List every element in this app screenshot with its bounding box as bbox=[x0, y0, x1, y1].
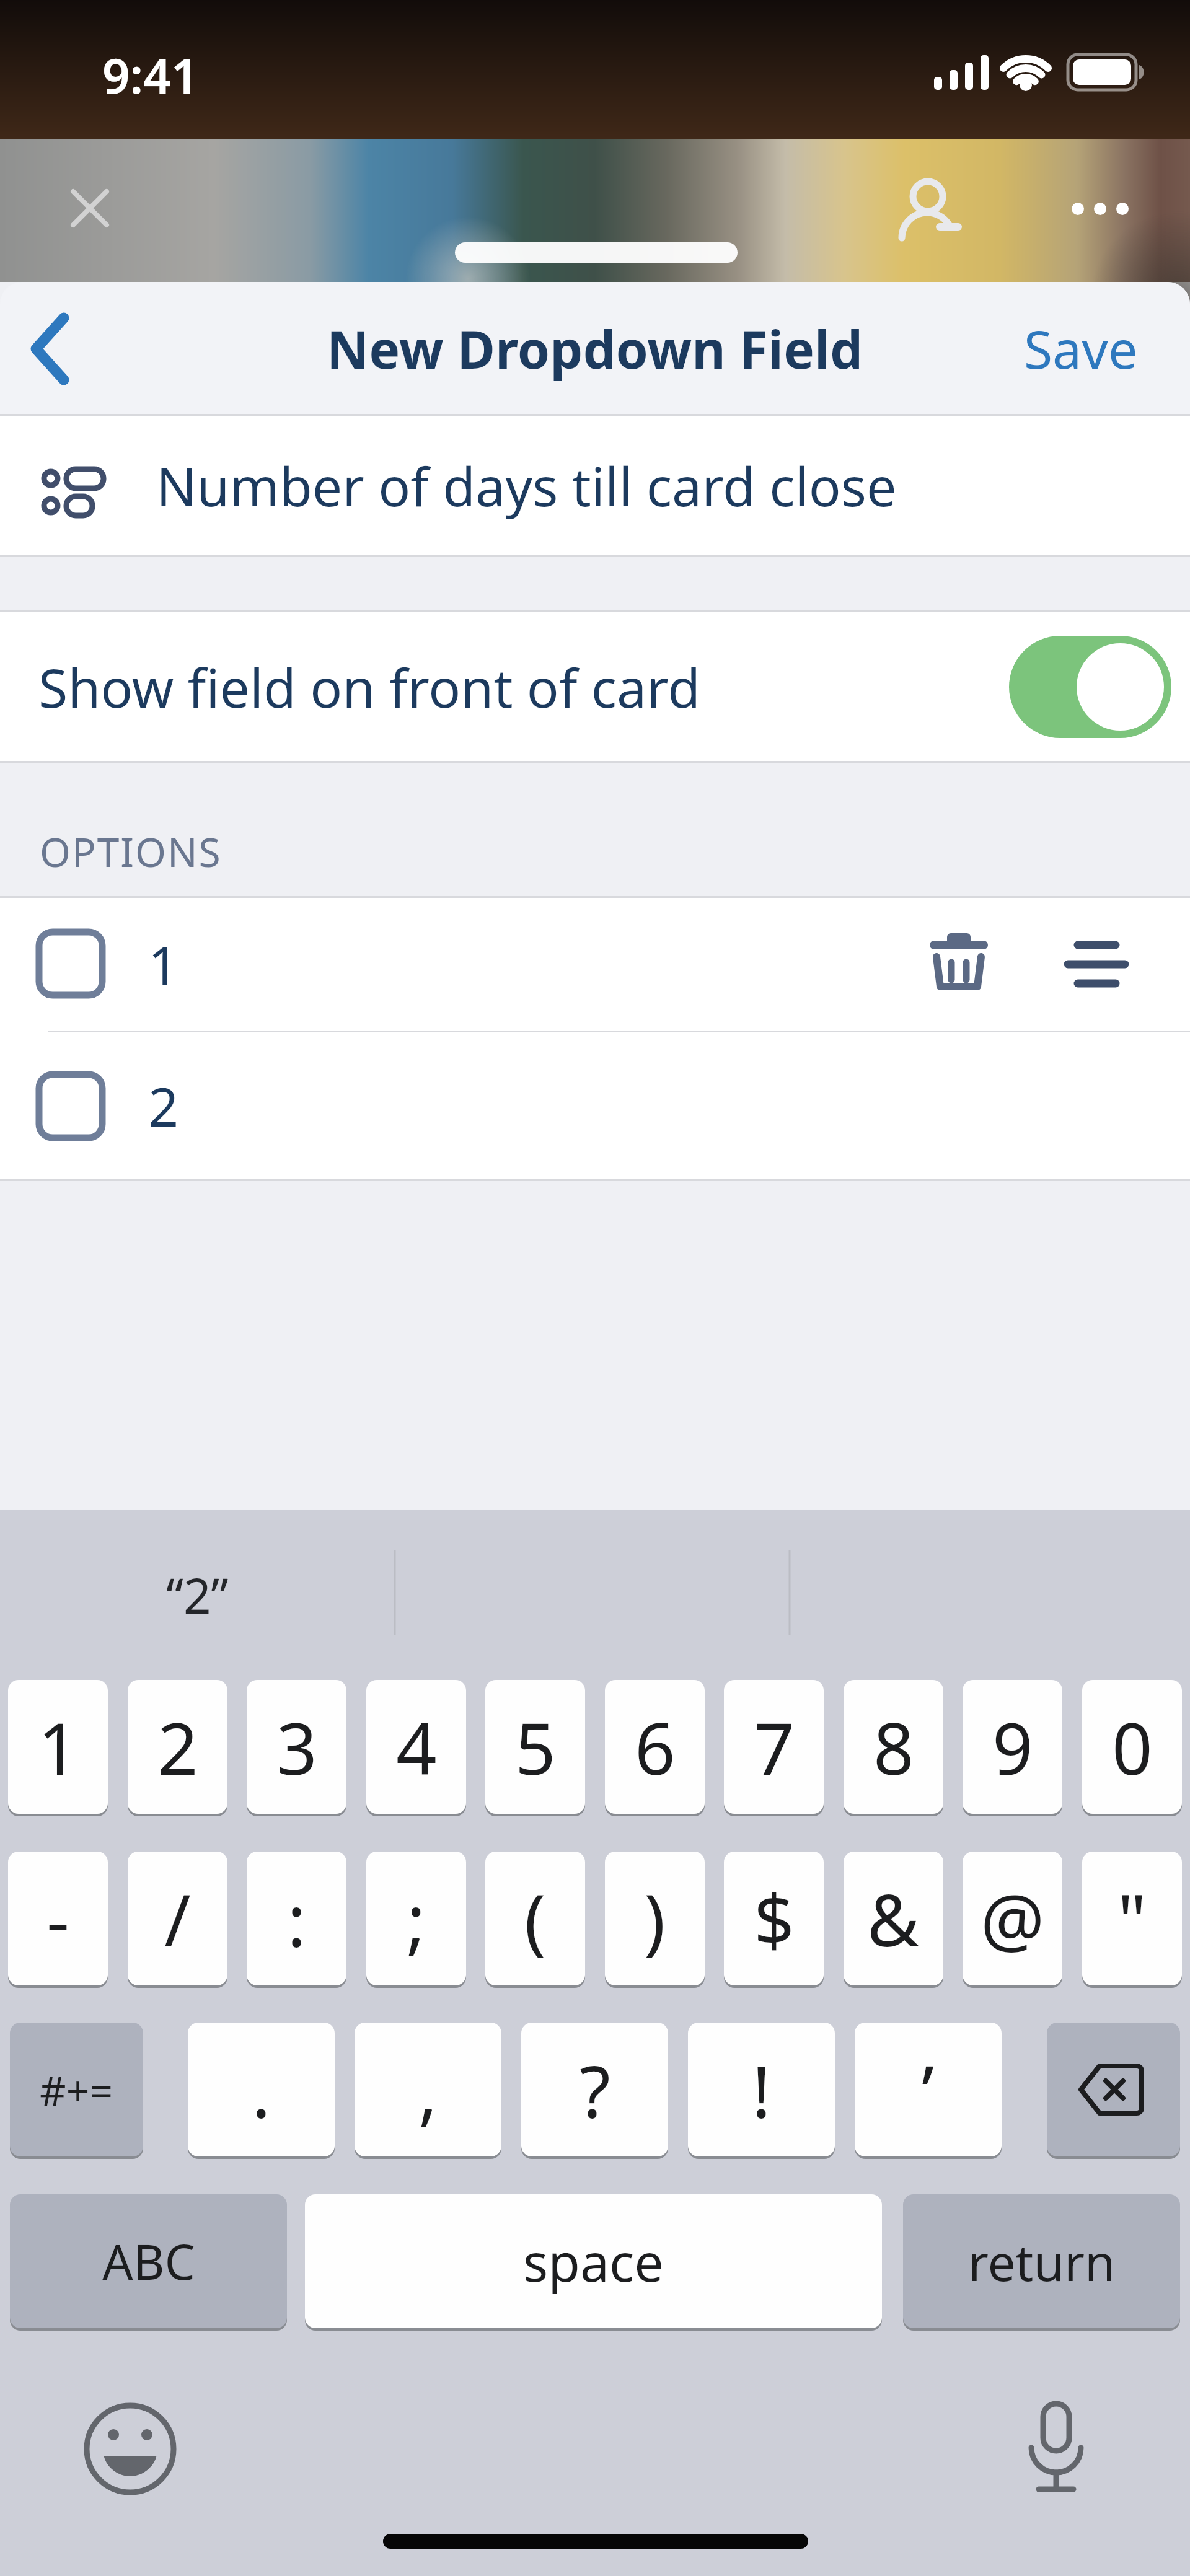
staticText: 1 bbox=[38, 1699, 79, 1796]
staticText: 2 bbox=[157, 1699, 198, 1796]
button[interactable]: ; bbox=[366, 1852, 466, 1985]
staticText: ABC bbox=[102, 2228, 195, 2294]
button[interactable]: return bbox=[903, 2194, 1180, 2328]
button[interactable]: “2” bbox=[166, 1562, 229, 1628]
button[interactable]: Show field on front of card bbox=[0, 612, 1190, 761]
staticText: , bbox=[418, 2041, 438, 2139]
staticText: return bbox=[968, 2228, 1116, 2295]
button[interactable]: ’ bbox=[855, 2023, 1002, 2156]
staticText: ) bbox=[644, 1870, 666, 1967]
button[interactable] bbox=[1066, 177, 1140, 251]
button[interactable]: ) bbox=[605, 1852, 705, 1985]
button[interactable]: ? bbox=[521, 2023, 668, 2156]
button[interactable] bbox=[74, 2393, 186, 2505]
staticText: ’ bbox=[922, 2041, 935, 2139]
button[interactable]: / bbox=[128, 1852, 227, 1985]
button[interactable]: 9 bbox=[963, 1680, 1062, 1814]
button[interactable]: ! bbox=[688, 2023, 835, 2156]
staticText: space bbox=[523, 2226, 664, 2297]
button[interactable] bbox=[1009, 636, 1171, 738]
button[interactable]: , bbox=[355, 2023, 501, 2156]
staticText: - bbox=[46, 1870, 70, 1967]
button[interactable]: Number of days till card close bbox=[0, 416, 1190, 555]
staticText: / bbox=[164, 1870, 191, 1967]
button[interactable]: & bbox=[844, 1852, 943, 1985]
button[interactable]: 4 bbox=[366, 1680, 466, 1814]
button[interactable]: 5 bbox=[485, 1680, 585, 1814]
staticText: 3 bbox=[276, 1699, 317, 1796]
button[interactable]: 1 bbox=[0, 898, 1190, 1031]
staticText: 9 bbox=[992, 1699, 1033, 1796]
button[interactable]: ABC bbox=[10, 2194, 287, 2328]
staticText: ; bbox=[407, 1870, 426, 1967]
staticText: . bbox=[252, 2041, 271, 2139]
staticText: 1 bbox=[148, 928, 179, 1001]
button[interactable] bbox=[899, 170, 967, 239]
staticText: Number of days till card close bbox=[156, 449, 897, 522]
button[interactable]: - bbox=[8, 1852, 108, 1985]
button[interactable]: . bbox=[188, 2023, 335, 2156]
staticText: 6 bbox=[635, 1699, 676, 1796]
staticText: ! bbox=[752, 2041, 771, 2139]
staticText: OPTIONS bbox=[40, 825, 222, 879]
staticText: 5 bbox=[515, 1699, 556, 1796]
staticText: $ bbox=[754, 1870, 795, 1967]
button[interactable]: #+= bbox=[10, 2023, 143, 2156]
button[interactable] bbox=[1047, 2023, 1180, 2156]
staticText: 0 bbox=[1112, 1699, 1153, 1796]
button[interactable] bbox=[0, 282, 74, 414]
staticText: New Dropdown Field bbox=[327, 313, 863, 384]
staticText: ( bbox=[524, 1870, 546, 1967]
button[interactable]: Save bbox=[1009, 313, 1153, 384]
staticText: @ bbox=[981, 1870, 1045, 1967]
button[interactable]: 2 bbox=[128, 1680, 227, 1814]
button[interactable]: 6 bbox=[605, 1680, 705, 1814]
staticText: 2 bbox=[148, 1070, 179, 1142]
staticText: #+= bbox=[40, 2062, 113, 2117]
button[interactable]: 3 bbox=[247, 1680, 346, 1814]
staticText: 4 bbox=[396, 1699, 437, 1796]
button[interactable]: ( bbox=[485, 1852, 585, 1985]
staticText: ? bbox=[580, 2041, 610, 2139]
staticText: " bbox=[1117, 1870, 1147, 1967]
staticText: 8 bbox=[873, 1699, 914, 1796]
button[interactable]: space bbox=[305, 2194, 882, 2328]
button[interactable]: 7 bbox=[724, 1680, 824, 1814]
button[interactable]: : bbox=[247, 1852, 346, 1985]
staticText: Show field on front of card bbox=[38, 651, 1009, 723]
button[interactable]: @ bbox=[963, 1852, 1062, 1985]
button[interactable]: 1 bbox=[8, 1680, 108, 1814]
button[interactable]: 2 bbox=[0, 1032, 1190, 1179]
staticText: 7 bbox=[754, 1699, 795, 1796]
button[interactable] bbox=[59, 177, 121, 239]
button[interactable]: 0 bbox=[1082, 1680, 1182, 1814]
button[interactable]: 8 bbox=[844, 1680, 943, 1814]
staticText: 9:41 bbox=[102, 42, 199, 108]
button[interactable]: " bbox=[1082, 1852, 1182, 1985]
staticText: : bbox=[287, 1870, 306, 1967]
staticText: Save bbox=[1024, 313, 1138, 384]
staticText: & bbox=[867, 1870, 920, 1967]
button[interactable]: $ bbox=[724, 1852, 824, 1985]
